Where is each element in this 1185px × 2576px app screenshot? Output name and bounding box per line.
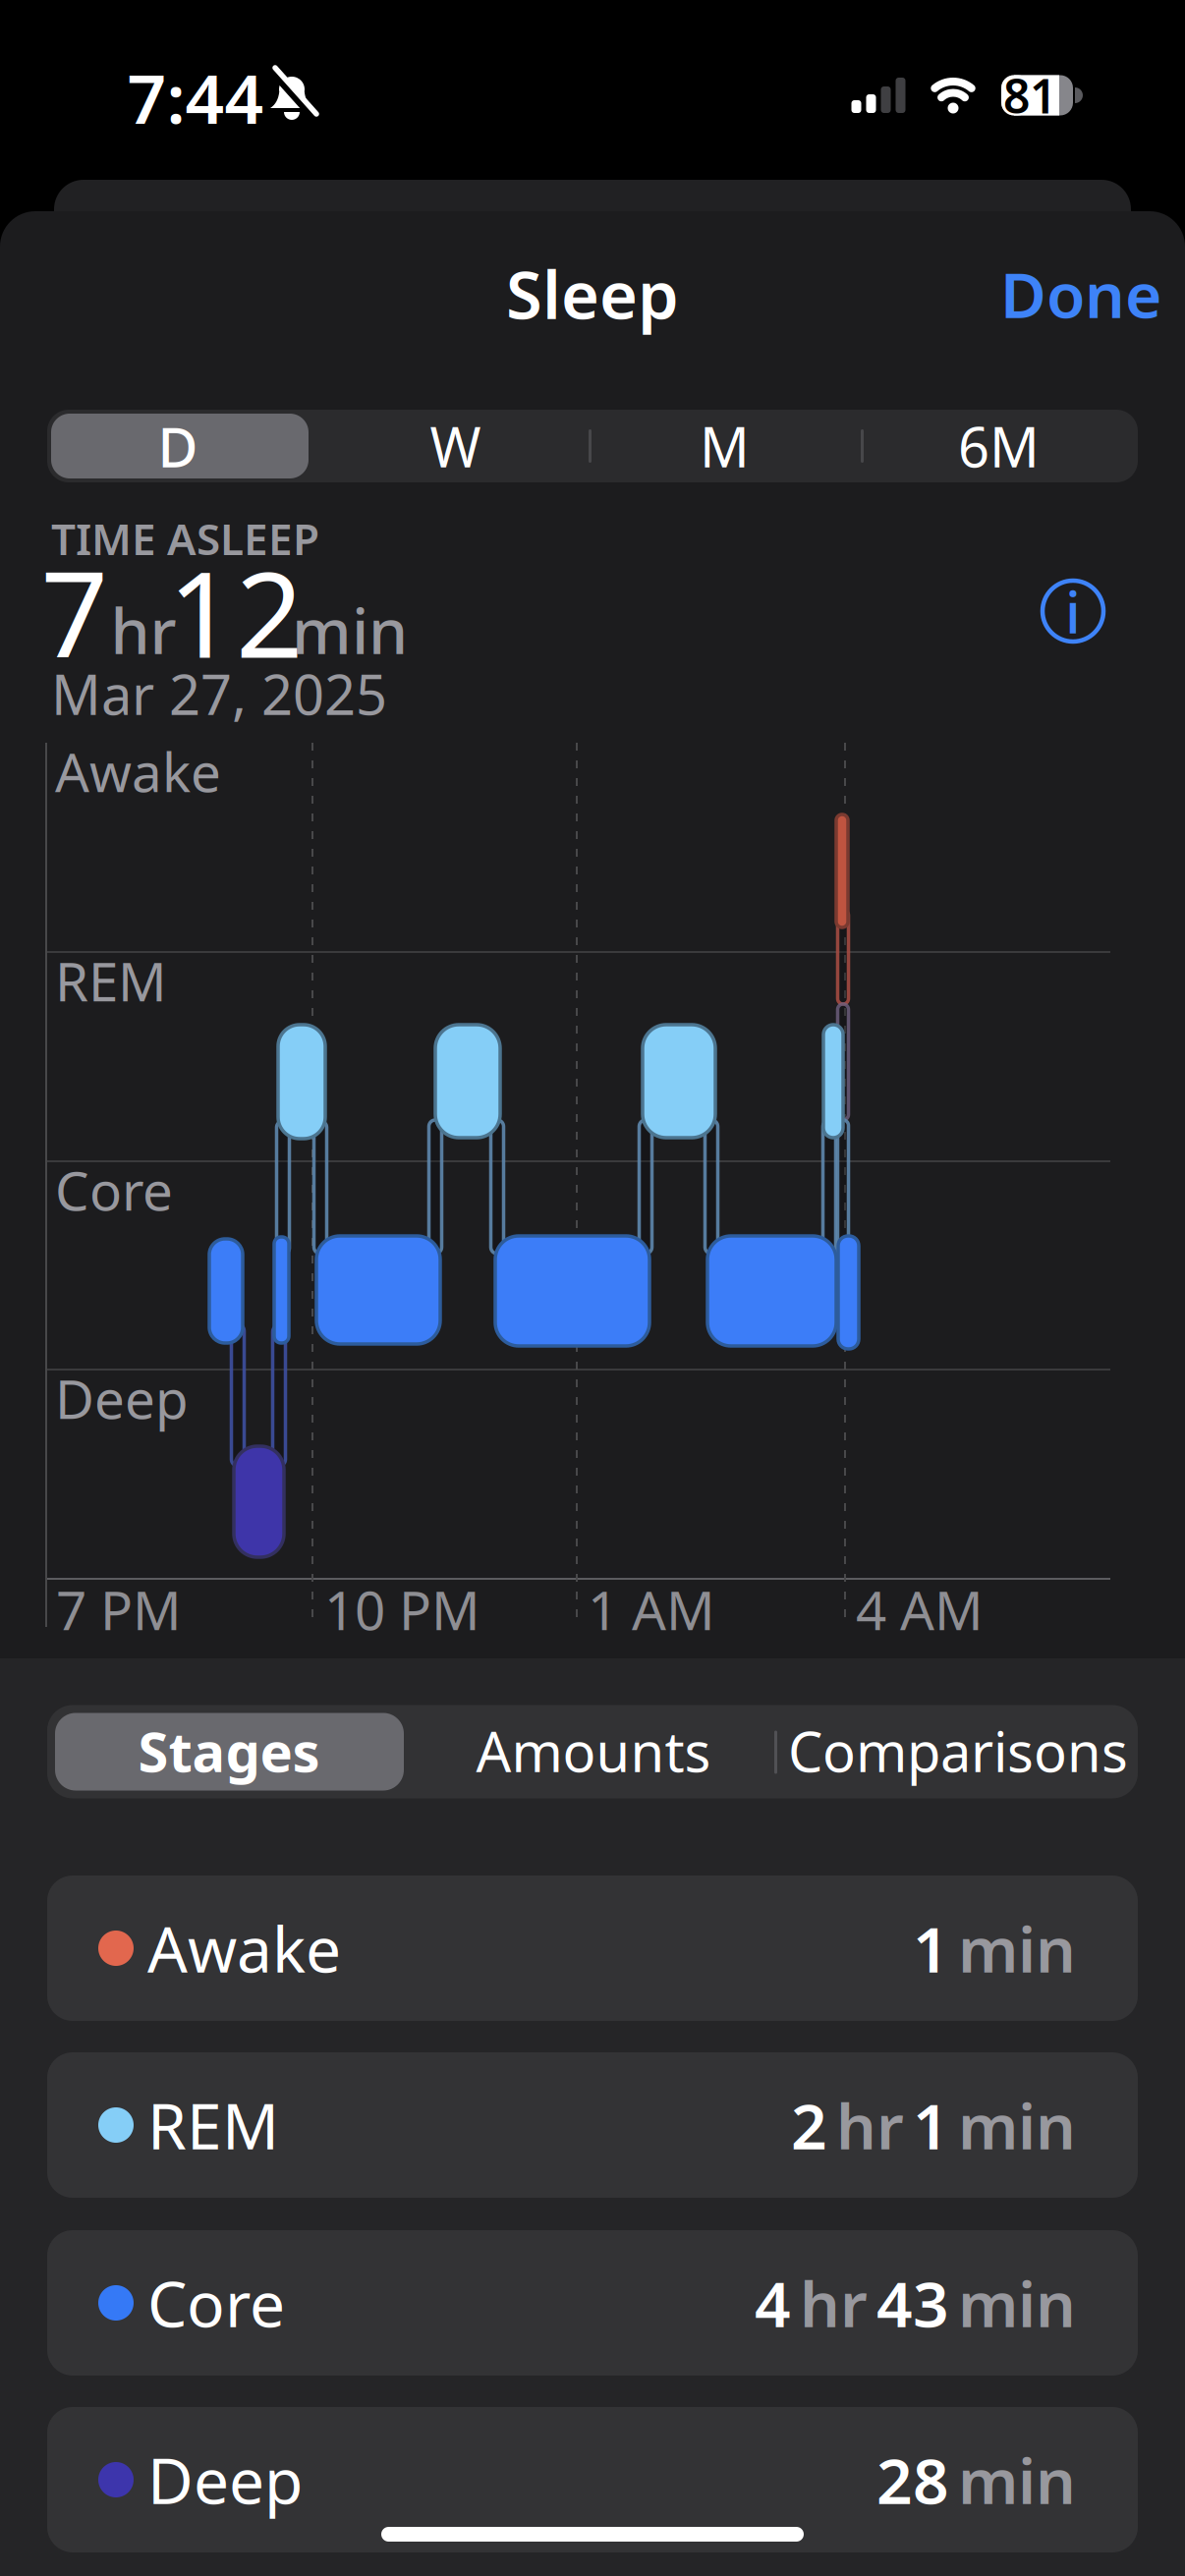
- staticText: 7 PM: [56, 1574, 182, 1645]
- button[interactable]: Amounts: [412, 1705, 775, 1798]
- staticText: 4 AM: [856, 1574, 984, 1645]
- button[interactable]: W: [320, 410, 592, 482]
- staticText: Awake: [147, 1906, 341, 1990]
- staticText: Comparisons: [788, 1714, 1128, 1787]
- staticText: 4: [755, 2261, 791, 2345]
- staticText: 1: [913, 2083, 949, 2167]
- staticText: Deep: [55, 1362, 189, 1434]
- staticText: min: [958, 2438, 1076, 2521]
- staticText: hr: [111, 588, 176, 672]
- staticText: M: [700, 409, 750, 483]
- button[interactable]: 6M: [863, 410, 1135, 482]
- staticText: Amounts: [476, 1714, 711, 1787]
- button[interactable]: Comparisons: [776, 1705, 1140, 1798]
- button[interactable]: REM: [47, 2052, 1138, 2198]
- button[interactable]: D: [47, 410, 309, 482]
- staticText: Sleep: [506, 250, 679, 337]
- staticText: D: [158, 409, 198, 483]
- button[interactable]: Deep: [47, 2407, 1138, 2552]
- staticText: hr: [800, 2261, 868, 2345]
- staticText: Core: [147, 2261, 285, 2345]
- staticText: min: [958, 1906, 1076, 1990]
- staticText: 7: [41, 534, 109, 690]
- staticText: Mar 27, 2025: [51, 657, 387, 730]
- staticText: Deep: [147, 2438, 303, 2521]
- staticText: min: [958, 2083, 1076, 2167]
- staticText: REM: [147, 2083, 279, 2167]
- staticText: 6M: [958, 409, 1040, 483]
- staticText: REM: [55, 945, 167, 1016]
- staticText: 12: [168, 534, 304, 690]
- staticText: W: [430, 409, 481, 483]
- staticText: 81: [1003, 64, 1056, 127]
- staticText: hr: [836, 2083, 904, 2167]
- button[interactable]: Done: [1012, 254, 1130, 333]
- button[interactable]: Awake: [47, 1876, 1138, 2021]
- staticText: 43: [876, 2261, 949, 2345]
- staticText: Core: [55, 1154, 173, 1225]
- staticText: i: [1065, 573, 1081, 649]
- staticText: TIME ASLEEP: [51, 510, 319, 567]
- staticText: min: [958, 2261, 1076, 2345]
- staticText: 10 PM: [324, 1574, 480, 1645]
- staticText: Done: [1000, 252, 1161, 336]
- staticText: 1: [913, 1906, 949, 1990]
- button[interactable]: Stages: [47, 1705, 411, 1798]
- button[interactable]: M: [589, 410, 861, 482]
- staticText: Stages: [138, 1714, 320, 1787]
- staticText: 7:44: [127, 52, 264, 143]
- button[interactable]: More info: [1039, 577, 1107, 645]
- staticText: 2: [791, 2083, 827, 2167]
- staticText: 28: [876, 2438, 949, 2521]
- staticText: Awake: [55, 736, 221, 807]
- staticText: 1 AM: [588, 1574, 715, 1645]
- staticText: min: [292, 588, 408, 672]
- button[interactable]: Core: [47, 2230, 1138, 2376]
